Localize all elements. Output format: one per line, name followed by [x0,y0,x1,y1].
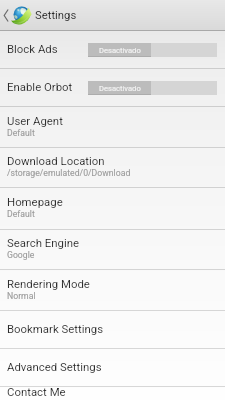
button[interactable]: Desactivado [88,81,217,95]
button[interactable]: Download Location [0,148,225,188]
staticText: Download Location [7,154,105,167]
staticText: Advanced Settings [7,360,102,373]
staticText: Search Engine [7,236,80,249]
staticText: Google [7,250,35,260]
staticText: Settings [35,9,77,22]
staticText: Desactivado [99,46,141,55]
button[interactable]: Enable Orbot [0,69,225,107]
button[interactable]: Bookmark Settings [0,311,225,349]
staticText: Homepage [7,195,63,208]
staticText: User Agent [7,114,63,127]
button[interactable]: Desactivado [88,43,217,57]
button[interactable]: Search Engine [0,230,225,270]
button[interactable]: User Agent [0,107,225,148]
staticText: Enable Orbot [7,80,73,93]
staticText: /storage/emulated/0/Download [7,168,131,178]
staticText: Block Ads [7,42,58,55]
button[interactable]: Advanced Settings [0,349,225,387]
staticText: Contact Me [7,385,66,398]
button[interactable]: Navigate up [0,0,11,31]
staticText: Normal [7,291,36,301]
staticText: Default [7,209,35,219]
staticText: Bookmark Settings [7,322,104,335]
button[interactable]: Block Ads [0,31,225,69]
staticText: Rendering Mode [7,277,90,290]
button[interactable]: Contact Me [0,387,225,400]
button[interactable]: Homepage [0,188,225,230]
staticText: Desactivado [99,84,141,93]
button[interactable]: Rendering Mode [0,270,225,311]
staticText: Default [7,128,35,138]
